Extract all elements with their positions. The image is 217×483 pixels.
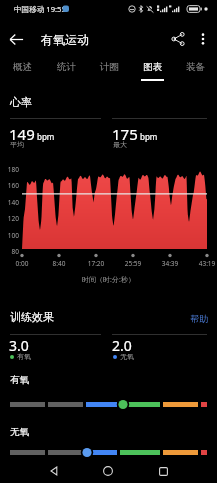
button[interactable]: 计圈	[88, 56, 131, 84]
staticText: 175	[112, 124, 138, 144]
staticText: 无氧	[120, 352, 134, 361]
staticText: 训练效果	[10, 310, 54, 324]
staticText: 25:59	[115, 259, 151, 268]
button[interactable]: Home	[94, 459, 122, 483]
staticText: 100	[0, 231, 19, 240]
staticText: 有氧	[10, 374, 29, 386]
staticText: bpm	[37, 131, 55, 142]
staticText: 平均	[10, 140, 24, 149]
staticText: 120	[0, 214, 19, 223]
staticText: 160	[0, 181, 19, 190]
staticText: 17:20	[78, 259, 114, 268]
staticText: bpm	[140, 131, 158, 142]
button[interactable]: More options	[191, 27, 215, 51]
button[interactable]: Back	[3, 26, 29, 52]
button[interactable]: Share	[166, 27, 190, 51]
staticText: 中国移动 19:55	[14, 4, 66, 14]
button[interactable]: Recent apps	[149, 459, 177, 483]
button[interactable]: Back	[40, 459, 68, 483]
staticText: 概述	[13, 61, 32, 73]
button[interactable]: 概述	[0, 56, 44, 84]
staticText: 统计	[57, 61, 76, 73]
button[interactable]: 统计	[44, 56, 88, 84]
staticText: 有氧	[17, 352, 31, 361]
staticText: 有氧运动	[41, 32, 89, 47]
staticText: 80	[0, 247, 19, 256]
staticText: 140	[0, 198, 19, 207]
staticText: 计圈	[100, 61, 119, 73]
staticText: 2.0	[112, 336, 132, 355]
staticText: 34:39	[152, 259, 188, 268]
staticText: 0:00	[4, 259, 40, 268]
staticText: 180	[0, 165, 19, 174]
staticText: 图表	[143, 61, 162, 73]
staticText: 8:40	[41, 259, 77, 268]
staticText: 3.0	[9, 336, 29, 355]
staticText: 最大	[113, 140, 127, 149]
staticText: 帮助	[190, 313, 208, 324]
staticText: 装备	[186, 61, 205, 73]
button[interactable]: 帮助	[178, 310, 208, 326]
staticText: 43:19	[189, 259, 217, 268]
staticText: 无氧	[10, 426, 29, 438]
staticText: 时间（时:分:秒）	[0, 275, 217, 285]
button[interactable]: 装备	[174, 56, 217, 84]
button[interactable]: 图表	[131, 56, 174, 84]
staticText: 149	[9, 124, 35, 144]
staticText: 心率	[10, 95, 32, 109]
